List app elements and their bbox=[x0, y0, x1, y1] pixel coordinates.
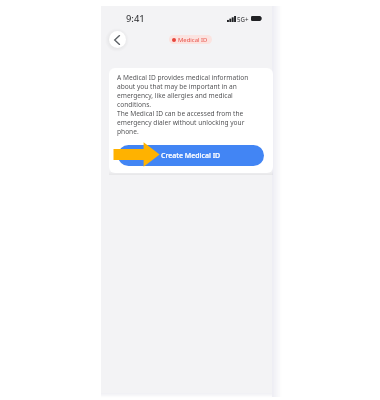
button[interactable]: Create Medical ID bbox=[118, 145, 264, 166]
button[interactable]: Medical ID bbox=[169, 35, 212, 44]
staticText: The Medical ID can be accessed from the … bbox=[117, 109, 267, 136]
staticText: Medical ID bbox=[178, 36, 208, 44]
staticText: Create Medical ID bbox=[161, 151, 221, 161]
staticText: A Medical ID provides medical informatio… bbox=[117, 73, 267, 109]
staticText: 5G+ bbox=[237, 15, 249, 23]
staticText: 9:41 bbox=[126, 12, 145, 25]
button[interactable]: Back bbox=[109, 31, 126, 48]
